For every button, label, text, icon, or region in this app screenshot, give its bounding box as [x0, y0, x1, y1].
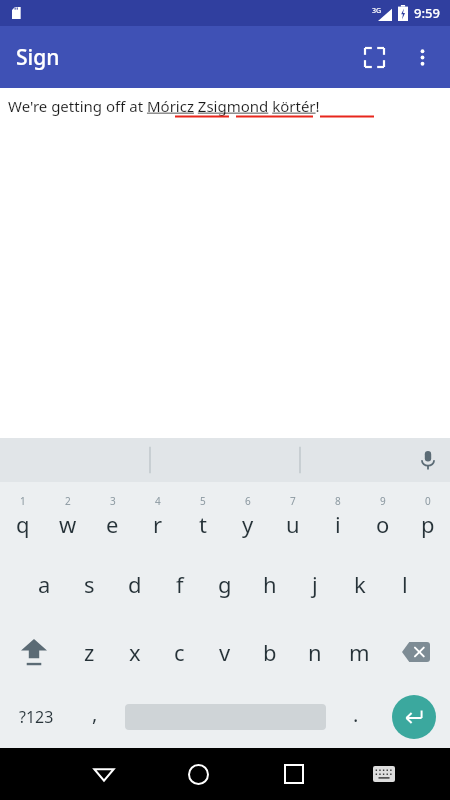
staticText: u — [286, 509, 300, 539]
button[interactable]: 7 — [270, 482, 315, 550]
button[interactable]: 3 — [90, 482, 135, 550]
button[interactable]: 4 — [135, 482, 180, 550]
staticText: 1 — [20, 494, 26, 508]
button[interactable]: s — [67, 550, 112, 618]
staticText: n — [308, 637, 322, 667]
button[interactable]: Recents — [246, 748, 341, 800]
button[interactable]: d — [112, 550, 157, 618]
staticText: o — [376, 509, 390, 539]
button[interactable]: n — [292, 618, 337, 686]
button[interactable]: 9 — [360, 482, 405, 550]
staticText: p — [421, 509, 435, 539]
button[interactable]: ?123 — [0, 686, 72, 748]
button[interactable]: m — [337, 618, 382, 686]
button[interactable]: , — [72, 686, 117, 748]
button[interactable]: j — [292, 550, 337, 618]
staticText: Sign — [16, 43, 60, 72]
staticText: 8 — [335, 494, 341, 508]
button[interactable]: Voice input — [406, 438, 450, 482]
staticText: r — [153, 509, 163, 539]
staticText: m — [349, 637, 370, 667]
button[interactable]: g — [202, 550, 247, 618]
staticText: f — [176, 569, 184, 599]
button[interactable]: z — [67, 618, 112, 686]
staticText: 5 — [200, 494, 206, 508]
staticText: i — [335, 509, 341, 539]
staticText: 3 — [110, 494, 116, 508]
staticText: 0 — [425, 494, 431, 508]
staticText: j — [312, 569, 318, 599]
button[interactable]: Enter — [378, 686, 450, 748]
staticText: b — [263, 637, 277, 667]
staticText: ?123 — [19, 706, 54, 728]
staticText: a — [38, 569, 51, 599]
staticText: 9 — [380, 494, 386, 508]
staticText: 7 — [290, 494, 296, 508]
button[interactable]: x — [112, 618, 157, 686]
button[interactable]: 1 — [0, 482, 45, 550]
staticText: x — [129, 637, 141, 667]
staticText: 4 — [155, 494, 161, 508]
button[interactable]: a — [22, 550, 67, 618]
button[interactable]: 0 — [405, 482, 450, 550]
staticText: . — [353, 701, 359, 728]
staticText: k — [354, 569, 366, 599]
staticText: w — [59, 509, 77, 539]
button[interactable]: k — [337, 550, 382, 618]
staticText: s — [84, 569, 95, 599]
staticText: c — [174, 637, 185, 667]
button[interactable]: Space — [117, 686, 333, 748]
staticText: d — [128, 569, 142, 599]
button[interactable]: Shift — [0, 618, 67, 686]
button[interactable]: b — [247, 618, 292, 686]
staticText: h — [263, 569, 277, 599]
button[interactable]: v — [202, 618, 247, 686]
staticText: e — [106, 509, 119, 539]
staticText: 3G — [372, 6, 382, 16]
staticText: z — [84, 637, 95, 667]
button[interactable]: 6 — [225, 482, 270, 550]
staticText: 6 — [245, 494, 251, 508]
button[interactable]: More options — [398, 33, 446, 81]
button[interactable]: 8 — [315, 482, 360, 550]
button[interactable]: Switch keyboard — [341, 748, 426, 800]
button[interactable]: 2 — [45, 482, 90, 550]
button[interactable]: c — [157, 618, 202, 686]
button[interactable]: Backspace — [382, 618, 450, 686]
staticText: 9:59 — [414, 4, 440, 22]
button[interactable]: Home — [151, 748, 246, 800]
button[interactable]: Back — [56, 748, 151, 800]
staticText: q — [16, 509, 30, 539]
button[interactable]: h — [247, 550, 292, 618]
staticText: l — [402, 569, 408, 599]
button[interactable]: l — [382, 550, 427, 618]
staticText: v — [219, 637, 231, 667]
button[interactable]: f — [157, 550, 202, 618]
staticText: y — [242, 509, 254, 539]
staticText: 2 — [65, 494, 71, 508]
staticText: We're getting off at Móricz Zsigmond kör… — [8, 96, 320, 116]
staticText: t — [199, 509, 207, 539]
staticText: g — [218, 569, 232, 599]
button[interactable]: . — [333, 686, 378, 748]
button[interactable]: 5 — [180, 482, 225, 550]
staticText: , — [92, 700, 98, 727]
button[interactable]: Fullscreen — [350, 33, 398, 81]
